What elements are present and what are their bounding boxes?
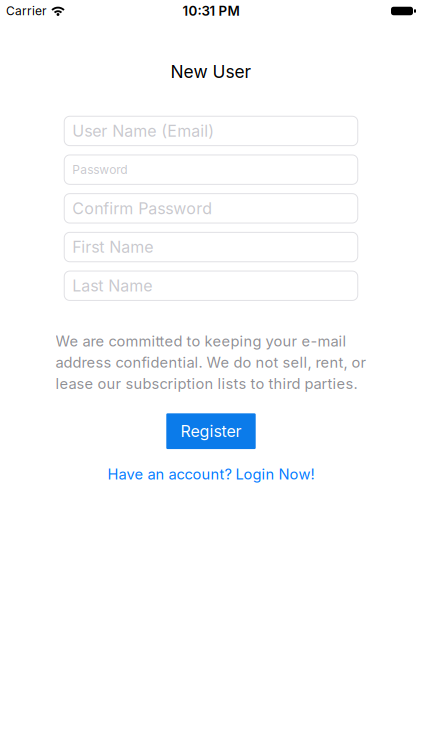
staticText: User Name (Email): [72, 121, 214, 140]
button[interactable]: Have an account? Login Now!: [107, 466, 314, 483]
staticText: address confidential. We do not sell, re…: [55, 354, 366, 371]
staticText: lease our subscription lists to third pa…: [55, 375, 357, 392]
button[interactable]: Register: [166, 413, 256, 449]
staticText: Last Name: [72, 276, 152, 295]
button[interactable]: Password text field: [64, 155, 358, 184]
button[interactable]: Last Name text field: [64, 271, 358, 300]
button[interactable]: Confirm Password text field: [64, 194, 358, 223]
button[interactable]: User Name (Email) text field: [64, 116, 358, 146]
staticText: We are committed to keeping your e-mail: [55, 332, 346, 350]
staticText: Confirm Password: [72, 199, 212, 218]
staticText: First Name: [72, 238, 153, 256]
staticText: Carrier: [6, 4, 47, 18]
staticText: Have an account? Login Now!: [107, 466, 314, 483]
staticText: 10:31 PM: [182, 3, 239, 19]
staticText: Password: [72, 163, 127, 177]
staticText: New User: [170, 61, 251, 82]
staticText: Register: [180, 422, 241, 441]
button[interactable]: First Name text field: [64, 232, 358, 262]
